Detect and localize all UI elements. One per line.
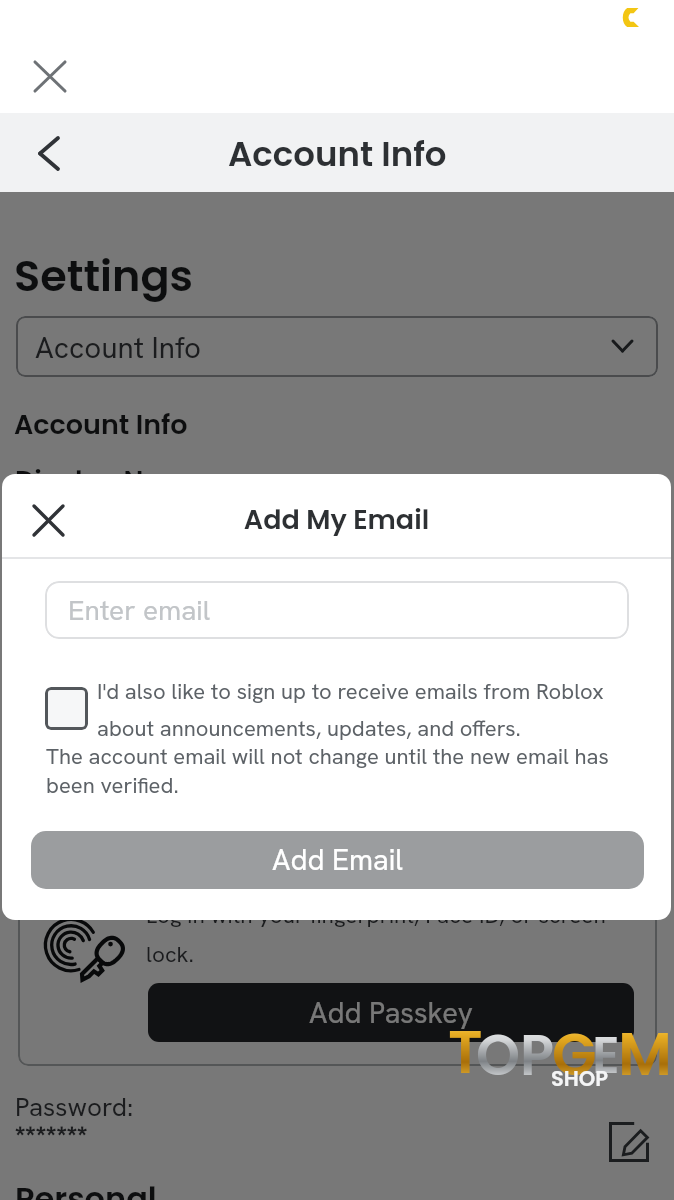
staticText: Display Name [15,462,207,500]
staticText: SHOP [551,1064,609,1093]
staticText: Enter email [68,592,211,628]
staticText: OP [476,1016,555,1094]
staticText: Account Info [228,130,447,178]
button[interactable]: Add Passkey [148,983,634,1042]
button[interactable]: Enter email [45,581,629,639]
staticText: Account Info [35,328,201,366]
button[interactable]: Back [26,130,72,176]
staticText: Add Email [272,841,403,879]
button[interactable]: Close dialog [24,496,72,544]
staticText: Account Info [14,406,188,444]
staticText: Password: [15,1090,134,1124]
staticText: I'd also like to sign up to receive emai… [97,677,604,743]
button[interactable]: Add Email [31,831,644,889]
staticText: ******* [15,1119,88,1153]
staticText: M [618,1012,672,1096]
staticText: T [448,1010,483,1094]
button[interactable]: Receive Roblox emails checkbox [45,687,88,730]
staticText: G [552,1014,597,1095]
staticText: Add My Email [2,501,671,539]
staticText: Settings [14,246,194,306]
button[interactable]: Close [27,53,73,99]
staticText: Log in with your fingerprint, Face ID, o… [146,900,606,969]
staticText: Add Passkey [309,994,473,1032]
button[interactable]: Edit password [600,1113,658,1171]
staticText: Personal [15,1176,157,1200]
staticText: E [592,1018,620,1091]
button[interactable]: Account Info [16,316,658,377]
staticText: The account email will not change until … [46,742,609,800]
